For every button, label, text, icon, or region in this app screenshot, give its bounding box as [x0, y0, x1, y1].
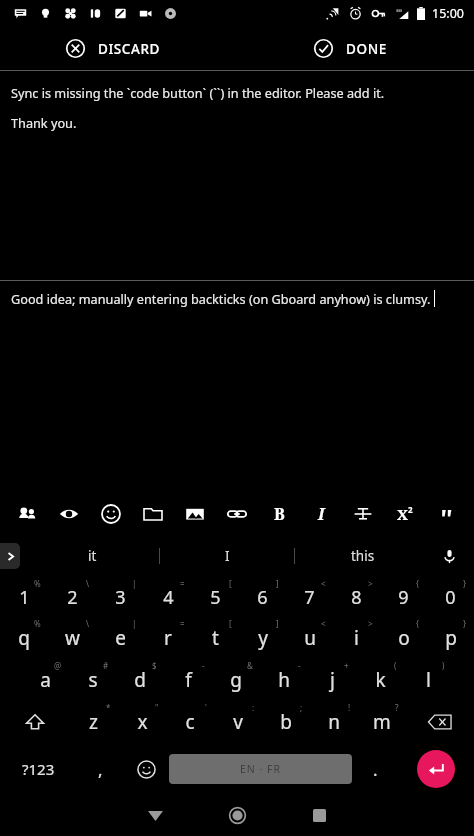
button[interactable]: u [286, 617, 333, 659]
button[interactable]: v [214, 701, 262, 743]
button[interactable]: 7 [286, 577, 333, 617]
button[interactable]: q [0, 617, 48, 659]
button[interactable]: Link [216, 493, 258, 535]
button[interactable]: k [356, 659, 404, 701]
button[interactable]: Backspace [406, 701, 474, 743]
staticText: 9 [398, 585, 409, 610]
staticText: - [202, 660, 205, 671]
staticText: ?123 [22, 759, 55, 779]
staticText: " [155, 702, 159, 713]
button[interactable]: 9 [380, 577, 427, 617]
button[interactable]: Image [174, 493, 216, 535]
button[interactable]: Back [127, 795, 183, 836]
button[interactable]: Strikethrough [342, 493, 384, 535]
button[interactable]: , [77, 743, 123, 795]
button[interactable]: 0 [427, 577, 474, 617]
button[interactable]: Good idea; manually entering backticks (… [0, 281, 474, 315]
button[interactable]: b [262, 701, 310, 743]
staticText: ! [348, 702, 351, 713]
staticText: b [280, 709, 292, 735]
button[interactable]: I [160, 535, 295, 577]
staticText: a [40, 667, 51, 693]
staticText: ] [276, 578, 279, 589]
button[interactable]: Emoji [123, 743, 169, 795]
button[interactable]: Italic [300, 493, 342, 535]
button[interactable]: Emoji [90, 493, 132, 535]
button[interactable]: 8 [333, 577, 380, 617]
button[interactable]: Shift [0, 701, 69, 743]
button[interactable]: Sync is missing the `code button` (``) i… [0, 71, 474, 280]
button[interactable]: Voice input [436, 543, 462, 569]
button[interactable]: Recents [291, 795, 347, 836]
button[interactable]: Superscript [384, 493, 426, 535]
button[interactable]: Preview [48, 493, 90, 535]
staticText: j [330, 667, 335, 693]
button[interactable]: Expand toolbar [0, 543, 20, 569]
staticText: I [318, 503, 325, 525]
button[interactable]: r [144, 617, 192, 659]
button[interactable]: 3 [96, 577, 144, 617]
button[interactable]: m [358, 701, 406, 743]
button[interactable]: DONE [310, 33, 391, 64]
staticText: 0 [445, 585, 456, 610]
staticText: 1 [19, 585, 30, 610]
button[interactable]: Mention [6, 493, 48, 535]
button[interactable]: it [24, 535, 160, 577]
button[interactable]: 4 [144, 577, 192, 617]
staticText: \ [86, 618, 89, 629]
button[interactable]: ?123 [0, 743, 77, 795]
button[interactable]: Quote [426, 493, 468, 535]
button[interactable]: w [48, 617, 96, 659]
button[interactable]: d [116, 659, 164, 701]
staticText: DISCARD [98, 40, 161, 58]
staticText: \ [86, 578, 89, 589]
button[interactable]: f [164, 659, 212, 701]
staticText: it [88, 547, 97, 565]
button[interactable]: z [69, 701, 118, 743]
staticText: ? [395, 702, 399, 713]
button[interactable]: this [295, 535, 430, 577]
staticText: ; [300, 702, 303, 713]
button[interactable]: t [192, 617, 239, 659]
button[interactable]: a [22, 659, 69, 701]
button[interactable]: Bold [258, 493, 300, 535]
button[interactable]: 1 [0, 577, 48, 617]
button[interactable]: y [239, 617, 286, 659]
button[interactable]: i [333, 617, 380, 659]
button[interactable]: p [427, 617, 474, 659]
staticText: r [164, 625, 172, 651]
button[interactable]: Home [209, 795, 265, 836]
button[interactable]: 6 [239, 577, 286, 617]
button[interactable]: DISCARD [62, 33, 165, 64]
staticText: 2 [408, 504, 413, 515]
button[interactable]: o [380, 617, 427, 659]
staticText: DONE [346, 40, 387, 58]
button[interactable]: c [166, 701, 214, 743]
staticText: Good idea; manually entering backticks (… [11, 290, 431, 307]
button[interactable]: j [308, 659, 356, 701]
staticText: this [351, 547, 375, 565]
button[interactable]: g [212, 659, 260, 701]
staticText: @ [54, 660, 62, 671]
button[interactable]: 2 [48, 577, 96, 617]
staticText: | [132, 578, 137, 589]
staticText: | [132, 618, 137, 629]
staticText: % [34, 578, 41, 589]
button[interactable]: x [118, 701, 166, 743]
button[interactable]: s [69, 659, 116, 701]
staticText: y [258, 625, 268, 651]
staticText: 3 [115, 585, 126, 610]
button[interactable]: Folder [132, 493, 174, 535]
button[interactable]: n [310, 701, 358, 743]
button[interactable]: e [96, 617, 144, 659]
staticText: = [180, 618, 185, 629]
button[interactable]: Enter [417, 750, 455, 788]
button[interactable]: . [352, 743, 398, 795]
button[interactable]: l [404, 659, 452, 701]
staticText: # [103, 660, 109, 671]
button[interactable]: EN · FR [169, 754, 352, 784]
button[interactable]: h [260, 659, 308, 701]
button[interactable]: 5 [192, 577, 239, 617]
staticText: = [180, 578, 185, 589]
staticText: } [463, 618, 467, 629]
